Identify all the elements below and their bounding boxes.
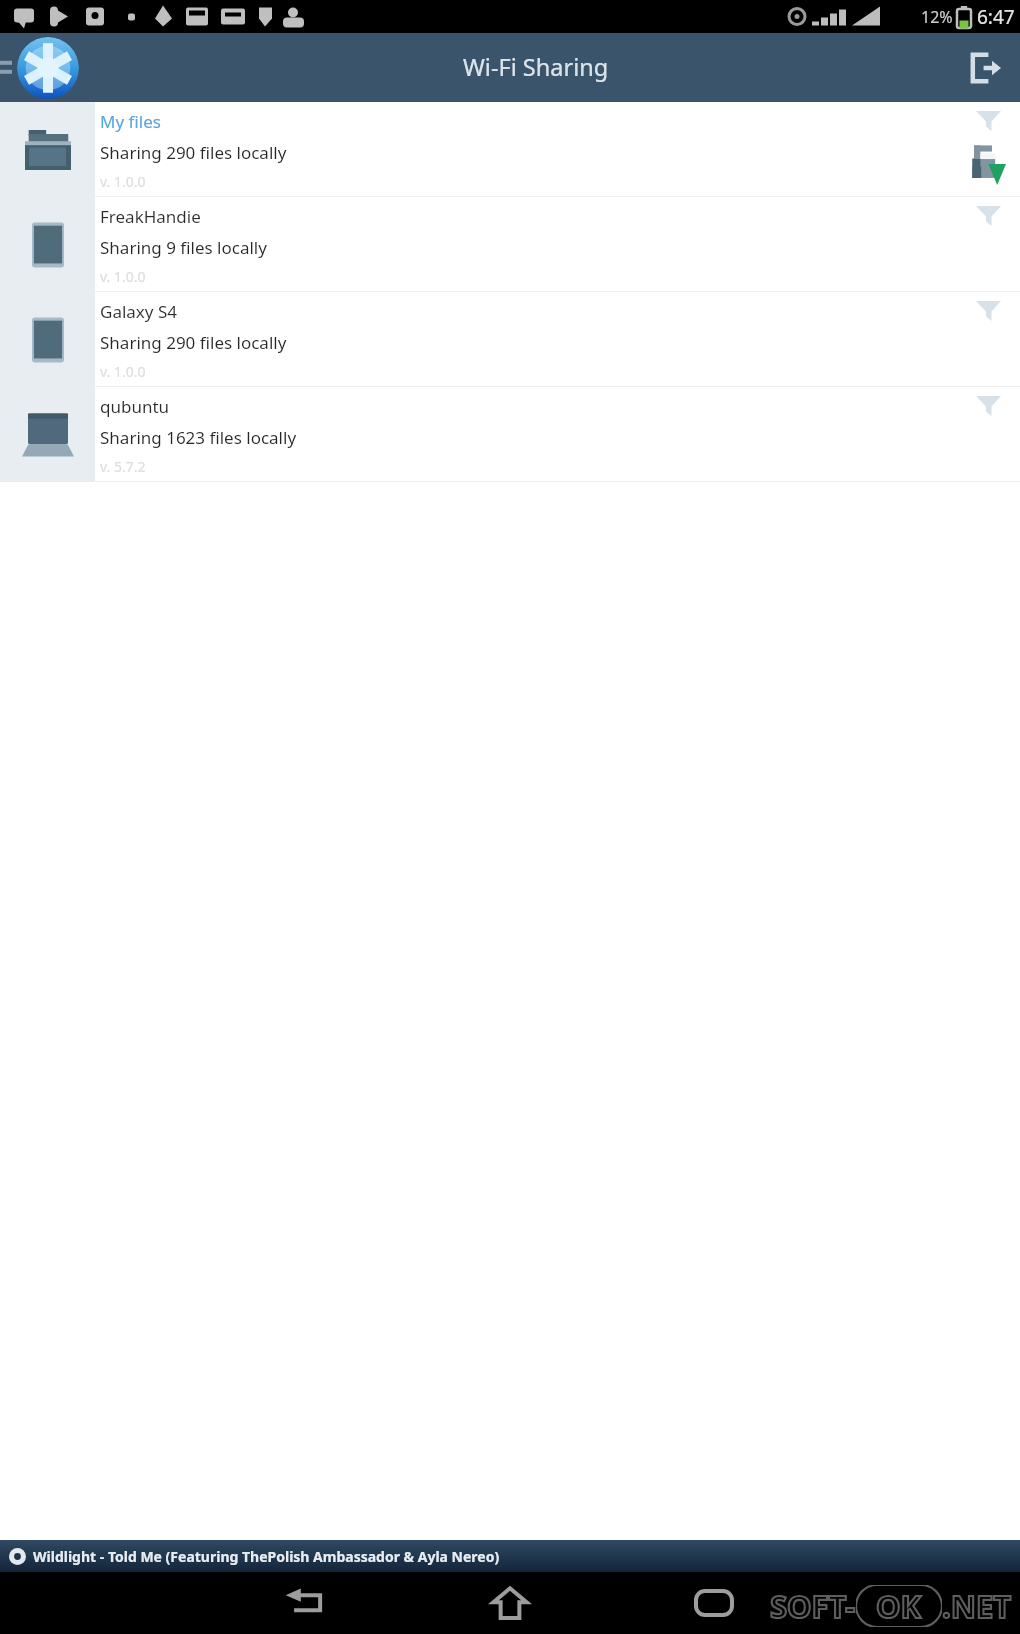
staticText: 6:47 [977, 4, 1015, 30]
staticText: Sharing 9 files locally [100, 236, 267, 259]
staticText: Sharing 1623 files locally [100, 426, 297, 449]
staticText: qubuntu [100, 395, 170, 418]
button[interactable]: My files [0, 102, 1020, 197]
button[interactable]: Home [470, 1572, 550, 1634]
staticText: Sharing 290 files locally [100, 331, 287, 354]
button[interactable]: Open menu [17, 37, 79, 99]
staticText: My files [100, 110, 161, 133]
staticText: Sharing 290 files locally [100, 141, 287, 164]
staticText: v. 1.0.0 [100, 362, 146, 381]
button[interactable]: Exit [960, 42, 1012, 94]
staticText: FreakHandie [100, 205, 201, 228]
button[interactable]: FreakHandie [0, 197, 1020, 292]
staticText: .NET [942, 1585, 1012, 1627]
staticText: Wildlight - Told Me (Featuring ThePolish… [33, 1547, 500, 1566]
button[interactable]: Filter [966, 384, 1010, 428]
button[interactable]: Galaxy S4 [0, 292, 1020, 387]
staticText: Galaxy S4 [100, 300, 177, 323]
staticText: SOFT- [770, 1585, 856, 1627]
button[interactable]: Filter [966, 289, 1010, 333]
staticText: v. 1.0.0 [100, 172, 146, 191]
button[interactable]: Wildlight - Told Me (Featuring ThePolish… [0, 1540, 1020, 1572]
staticText: Wi-Fi Sharing [463, 51, 609, 83]
button[interactable]: Filter [966, 99, 1010, 143]
staticText: v. 1.0.0 [100, 267, 146, 286]
button[interactable]: Sharing locked [966, 141, 1006, 185]
button[interactable]: qubuntu [0, 387, 1020, 482]
staticText: 12% [921, 6, 953, 28]
staticText: OK [876, 1585, 922, 1627]
staticText: v. 5.7.2 [100, 457, 146, 476]
button[interactable]: Recent apps [674, 1572, 754, 1634]
button[interactable]: Filter [966, 194, 1010, 238]
button[interactable]: Back [265, 1572, 345, 1634]
